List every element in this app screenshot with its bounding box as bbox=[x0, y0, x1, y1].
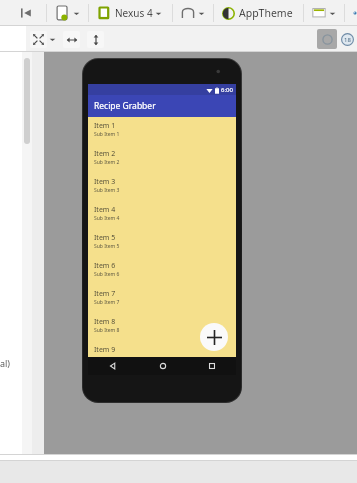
button[interactable]: Orientation bbox=[181, 6, 205, 20]
button[interactable]: Device configuration bbox=[55, 6, 80, 21]
button[interactable]: Item 8 bbox=[88, 316, 236, 335]
staticText: Sub Item 7 bbox=[94, 299, 120, 306]
button[interactable]: Recipe Grabber bbox=[88, 95, 236, 117]
button[interactable]: Item 3 bbox=[88, 176, 236, 195]
staticText: Sub Item 5 bbox=[94, 243, 120, 250]
button[interactable]: Item 4 bbox=[88, 204, 236, 223]
staticText: Sub Item 1 bbox=[94, 131, 120, 138]
button[interactable]: API level bbox=[341, 33, 354, 46]
staticText: Item 7 bbox=[94, 289, 116, 299]
button[interactable]: Item 9 bbox=[88, 344, 236, 357]
button[interactable]: Back bbox=[88, 357, 138, 375]
button[interactable]: Item 7 bbox=[88, 288, 236, 307]
button[interactable]: Add recipe bbox=[200, 323, 228, 351]
button[interactable]: Collapse bbox=[18, 5, 34, 21]
staticText: Item 2 bbox=[94, 149, 116, 159]
staticText: Sub Item 8 bbox=[94, 327, 120, 334]
staticText: Item 8 bbox=[94, 317, 116, 327]
staticText: AppTheme bbox=[239, 6, 293, 20]
button[interactable]: Recents bbox=[187, 357, 236, 375]
button[interactable]: Item 2 bbox=[88, 148, 236, 167]
button[interactable]: Locale bbox=[353, 6, 357, 20]
button[interactable]: AppTheme bbox=[222, 6, 293, 20]
button[interactable]: Activity bbox=[312, 6, 336, 20]
button[interactable]: Nexus 4 bbox=[97, 6, 162, 20]
staticText: 18 bbox=[344, 36, 351, 44]
staticText: Item 6 bbox=[94, 261, 116, 271]
staticText: Item 9 bbox=[94, 345, 116, 355]
button[interactable]: Home bbox=[138, 357, 187, 375]
staticText: Item 1 bbox=[94, 121, 116, 131]
button[interactable]: Item 1 bbox=[88, 120, 236, 139]
button[interactable]: Refresh render bbox=[317, 29, 337, 49]
staticText: Sub Item 4 bbox=[94, 215, 120, 222]
button[interactable]: Item 6 bbox=[88, 260, 236, 279]
button[interactable]: Zoom to fit bbox=[30, 31, 47, 48]
staticText: Recipe Grabber bbox=[94, 100, 156, 112]
button[interactable]: Fit height bbox=[87, 31, 104, 48]
staticText: Nexus 4 bbox=[115, 6, 153, 20]
staticText: Sub Item 3 bbox=[94, 187, 120, 194]
button[interactable]: Item 5 bbox=[88, 232, 236, 251]
staticText: Sub Item 2 bbox=[94, 159, 120, 166]
staticText: Item 4 bbox=[94, 205, 116, 215]
staticText: 6:00 bbox=[221, 86, 233, 94]
staticText: al) bbox=[0, 357, 11, 369]
button[interactable]: Fit width bbox=[63, 31, 80, 48]
staticText: Item 3 bbox=[94, 177, 116, 187]
staticText: Sub Item 6 bbox=[94, 271, 120, 278]
staticText: Item 5 bbox=[94, 233, 116, 243]
